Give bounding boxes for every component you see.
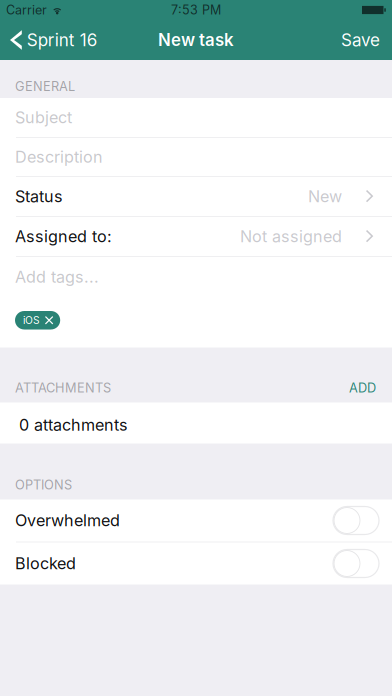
button[interactable]: Description — [0, 138, 392, 176]
staticText: New task — [158, 30, 234, 50]
button[interactable]: Subject — [0, 98, 392, 137]
button[interactable]: Sprint 16 — [0, 20, 106, 60]
staticText: Description — [15, 147, 103, 167]
staticText: Subject — [15, 108, 72, 127]
staticText: 0 attachments — [19, 415, 128, 435]
button[interactable]: ADD — [343, 376, 382, 399]
staticText: ATTACHMENTS — [15, 380, 111, 395]
button[interactable]: Save — [331, 20, 392, 60]
button[interactable]: Add tags... — [0, 257, 392, 297]
staticText: Save — [341, 30, 380, 50]
staticText: Status — [15, 187, 63, 206]
button[interactable]: 0 attachments — [0, 402, 392, 443]
staticText: GENERAL — [15, 78, 75, 94]
staticText: Not assigned — [240, 227, 342, 246]
button[interactable]: Overwhelmed — [0, 499, 392, 541]
staticText: Blocked — [15, 554, 76, 573]
button[interactable]: Assigned to: — [0, 217, 392, 256]
staticText: Carrier — [6, 2, 47, 18]
button[interactable]: iOS — [15, 311, 60, 329]
staticText: Assigned to: — [15, 227, 112, 246]
button[interactable]: Status — [0, 177, 392, 216]
staticText: iOS — [23, 314, 40, 326]
staticText: 7:53 PM — [171, 2, 221, 18]
staticText: Add tags... — [15, 267, 99, 287]
button[interactable]: Blocked — [0, 542, 392, 584]
staticText: ADD — [349, 380, 376, 395]
staticText: New — [308, 187, 342, 206]
staticText: OPTIONS — [15, 477, 72, 492]
staticText: Sprint 16 — [27, 30, 98, 50]
staticText: Overwhelmed — [15, 511, 120, 530]
